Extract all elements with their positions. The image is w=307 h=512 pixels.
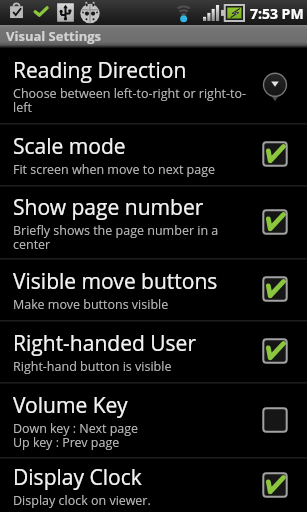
staticText: Right-hand button is visible [13,358,172,375]
button[interactable]: Show page number [0,187,307,258]
button[interactable]: Volume Key [0,384,307,457]
button[interactable]: Open list [260,71,290,101]
staticText: Display clock on viewer. [13,492,151,509]
button[interactable]: Checked [259,469,291,501]
button[interactable]: Checked [259,335,291,367]
button[interactable]: Checked [259,273,291,305]
button[interactable]: Checked [259,206,291,238]
staticText: Visual Settings [6,27,102,45]
staticText: Reading Direction [13,56,187,85]
staticText: Down key : Next page Up key : Prev page [13,420,139,451]
staticText: 7:53 PM [250,4,304,23]
staticText: Scale mode [13,132,126,161]
staticText: Display Clock [13,463,142,492]
staticText: Show page number [13,193,204,222]
staticText: Briefly shows the page number in a cente… [13,222,257,253]
staticText: Visible move buttons [13,267,218,296]
button[interactable]: Unchecked [259,404,291,436]
button[interactable]: Scale mode [0,125,307,185]
staticText: Choose between left-to-right or right-to… [13,85,257,116]
staticText: Volume Key [13,391,128,420]
button[interactable]: Right-handed User [0,322,307,382]
staticText: Fit screen when move to next page [13,161,216,178]
button[interactable]: Display Clock [0,459,307,512]
staticText: Make move buttons visible [13,296,169,313]
button[interactable]: Checked [259,138,291,170]
button[interactable]: Reading Direction [0,48,307,123]
staticText: Right-handed User [13,329,196,358]
button[interactable]: Visible move buttons [0,260,307,320]
